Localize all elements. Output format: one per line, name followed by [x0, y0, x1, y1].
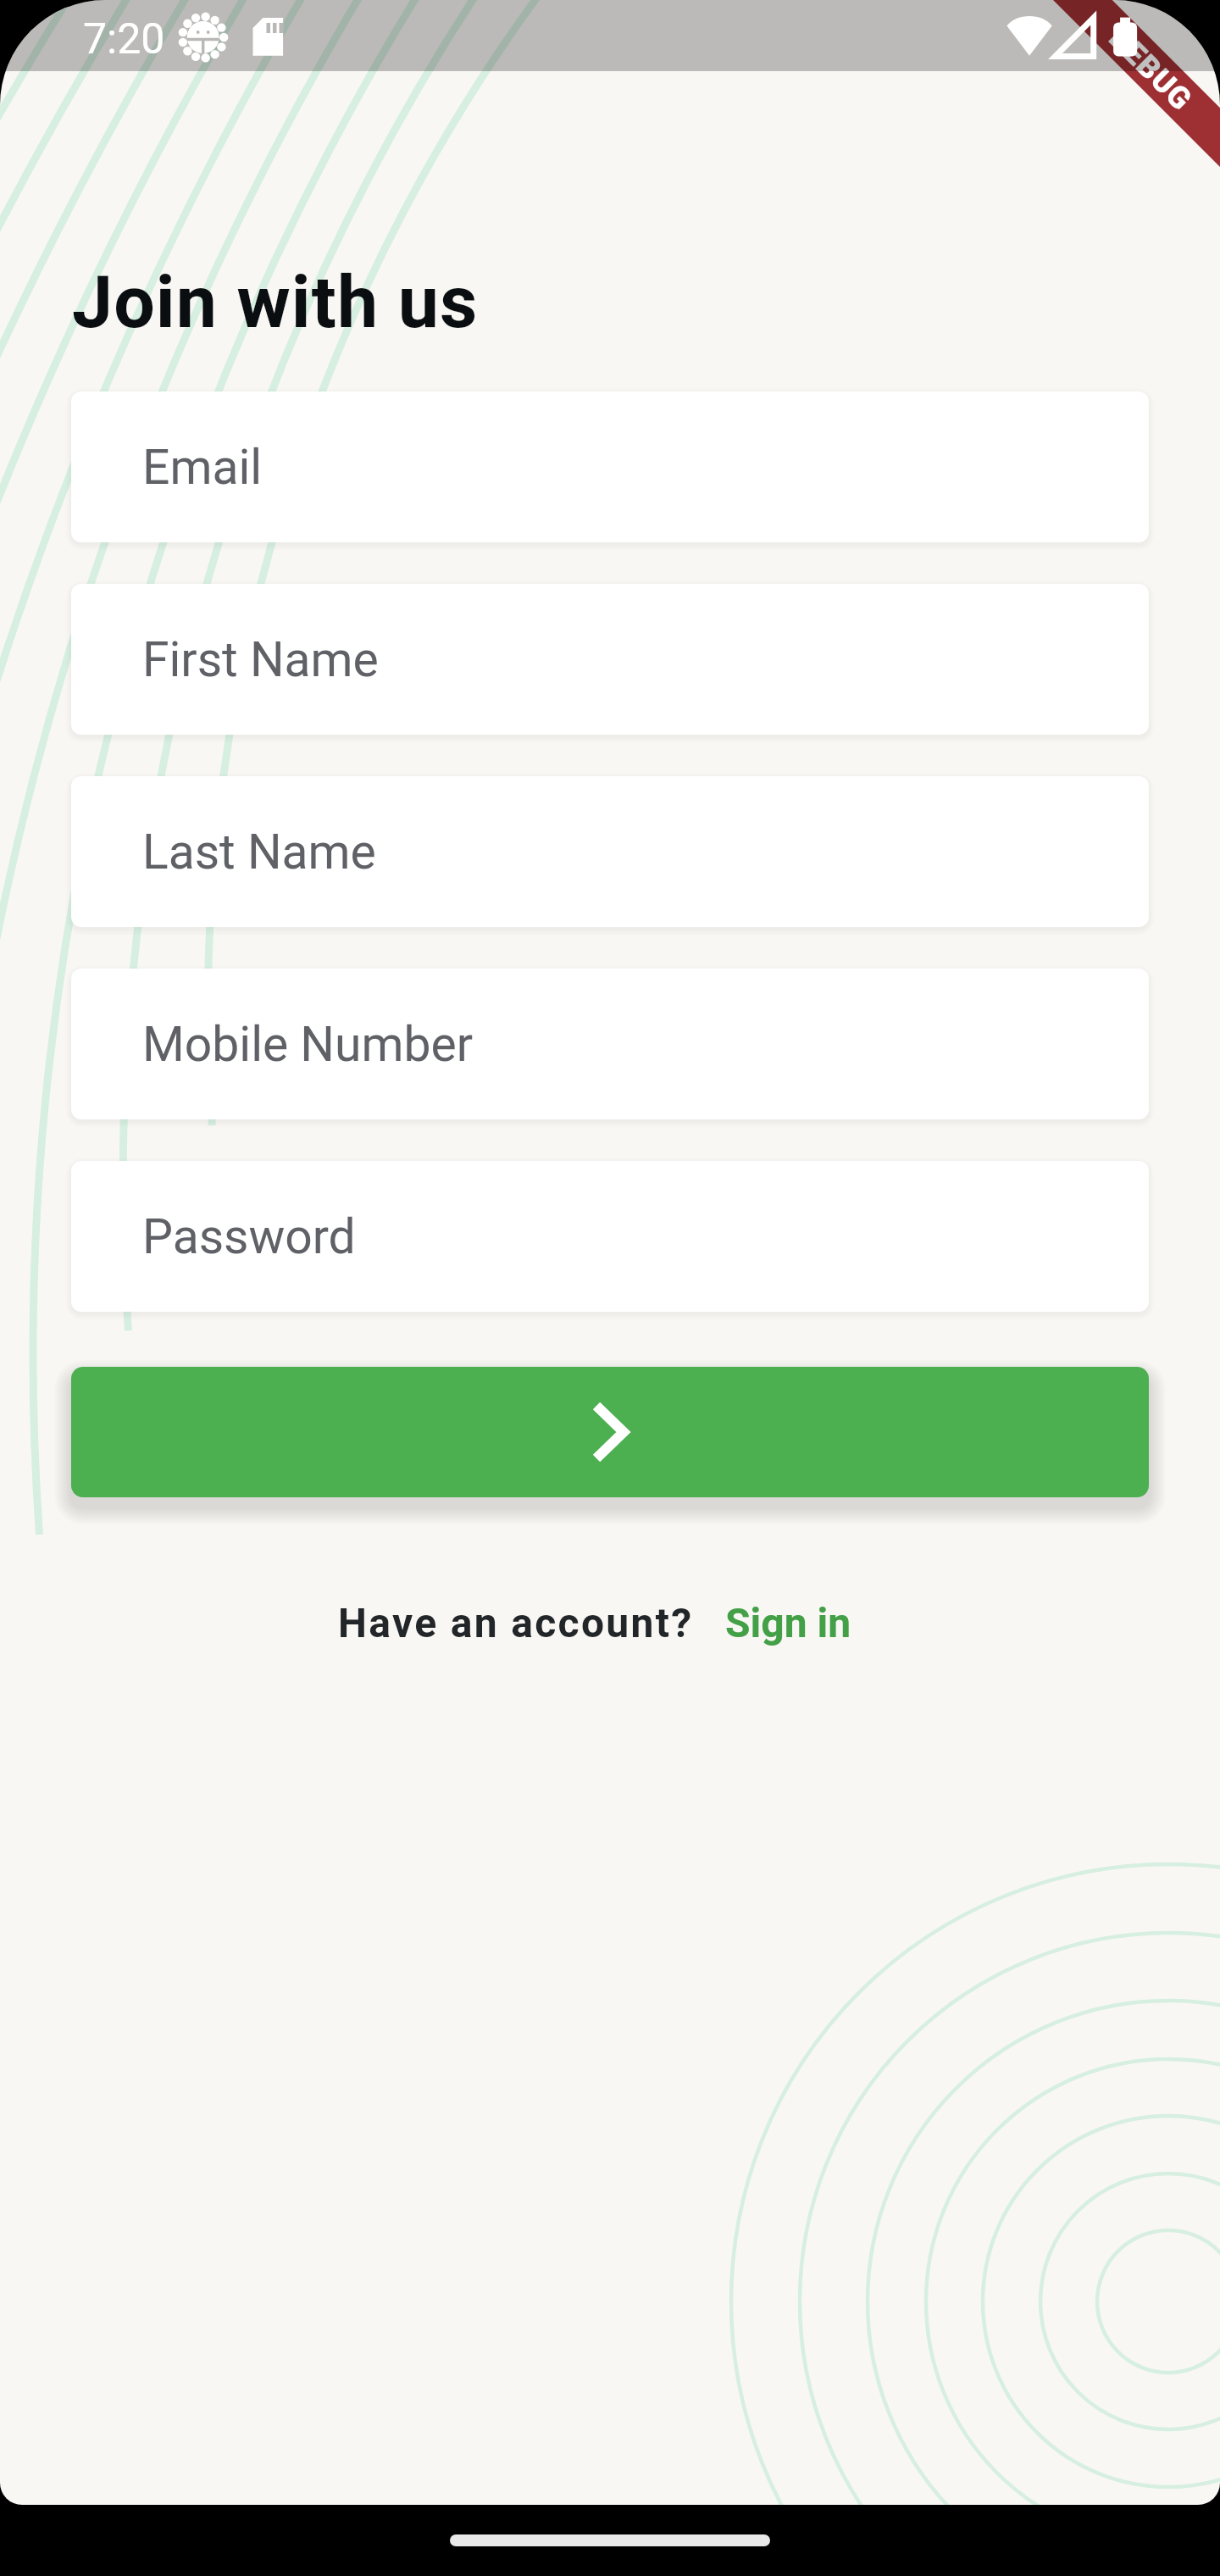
staticText: Sign in [725, 1599, 851, 1646]
button[interactable]: Email [71, 391, 1149, 542]
staticText: Join with us [72, 259, 479, 345]
button[interactable]: Sign in [725, 1599, 851, 1646]
staticText: Mobile Number [142, 1016, 473, 1073]
staticText: Have an account? [338, 1599, 694, 1646]
button[interactable]: Last Name [71, 776, 1149, 927]
staticText: Last Name [142, 824, 376, 880]
button[interactable]: Password [71, 1161, 1149, 1312]
button[interactable]: Mobile Number [71, 969, 1149, 1119]
button[interactable]: Next [71, 1367, 1149, 1497]
staticText: 7:20 [83, 14, 165, 64]
staticText: First Name [142, 631, 379, 688]
staticText: Password [142, 1208, 356, 1265]
staticText: DEBUG [1102, 21, 1199, 118]
staticText: Email [142, 439, 263, 496]
button[interactable]: First Name [71, 584, 1149, 735]
